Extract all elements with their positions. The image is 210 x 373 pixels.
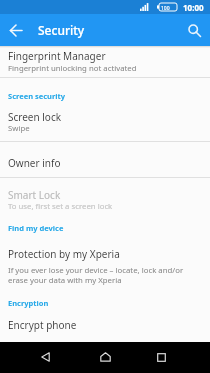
staticText: To use, first set a screen lock	[8, 201, 113, 212]
button[interactable]	[150, 346, 172, 368]
button[interactable]: Smart Lock	[0, 178, 210, 218]
button[interactable]	[94, 346, 116, 368]
staticText: Find my device	[8, 223, 64, 233]
staticText: Screen lock	[8, 110, 62, 124]
button[interactable]: Protection by my Xperia	[0, 236, 210, 290]
button[interactable]	[34, 346, 56, 368]
staticText: Encryption	[8, 298, 49, 308]
staticText: If you ever lose your device – locate, l…	[8, 265, 184, 285]
button[interactable]: Screen lock	[0, 104, 210, 141]
staticText: Screen security	[8, 91, 66, 101]
staticText: Swipe	[8, 123, 30, 134]
staticText: Protection by my Xperia	[8, 247, 120, 261]
staticText: Security	[38, 22, 85, 38]
staticText: Smart Lock	[8, 188, 61, 202]
button[interactable]	[4, 18, 28, 42]
staticText: 10:00	[183, 2, 204, 13]
button[interactable]	[182, 18, 206, 42]
button[interactable]: Owner info	[0, 142, 210, 177]
button[interactable]: Fingerprint Manager	[0, 46, 210, 77]
staticText: Owner info	[8, 156, 61, 170]
staticText: Encrypt phone	[8, 318, 77, 332]
staticText: 100	[161, 5, 170, 12]
staticText: Fingerprint unlocking not activated	[8, 63, 137, 74]
button[interactable]: Encrypt phone	[0, 310, 210, 342]
staticText: Fingerprint Manager	[8, 49, 106, 63]
